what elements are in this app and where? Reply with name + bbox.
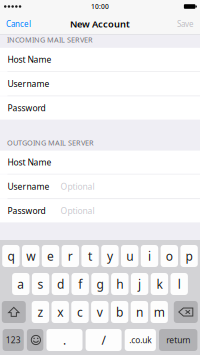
- staticText: u: [126, 248, 133, 264]
- staticText: v: [97, 304, 103, 320]
- staticText: t: [88, 248, 92, 264]
- staticText: Optional: [60, 205, 94, 216]
- staticText: New Account: [70, 18, 130, 30]
- staticText: h: [116, 276, 123, 292]
- button[interactable]: p: [180, 245, 198, 267]
- button[interactable]: k: [151, 273, 168, 295]
- button[interactable]: Username: [0, 174, 200, 198]
- staticText: Save: [177, 19, 194, 29]
- button[interactable]: j: [131, 273, 148, 295]
- button[interactable]: l: [170, 273, 188, 295]
- staticText: Username: [7, 181, 49, 192]
- staticText: y: [107, 248, 113, 264]
- button[interactable]: Password: [0, 96, 200, 120]
- staticText: o: [166, 248, 173, 264]
- staticText: .co.uk: [129, 334, 151, 346]
- staticText: i: [148, 248, 151, 264]
- staticText: n: [136, 304, 143, 320]
- staticText: Host Name: [7, 157, 51, 168]
- staticText: x: [57, 304, 63, 320]
- button[interactable]: v: [91, 301, 108, 323]
- staticText: w: [26, 248, 35, 264]
- staticText: 123: [6, 334, 21, 346]
- staticText: l: [178, 276, 181, 292]
- staticText: Optional: [60, 181, 94, 192]
- button[interactable]: t: [81, 245, 99, 267]
- button[interactable]: w: [22, 245, 39, 267]
- button[interactable]: u: [121, 245, 138, 267]
- button[interactable]: s: [32, 273, 49, 295]
- button[interactable]: e: [42, 245, 59, 267]
- staticText: OUTGOING MAIL SERVER: [7, 138, 94, 147]
- button[interactable]: Cancel: [0, 13, 36, 34]
- staticText: q: [7, 248, 14, 264]
- button[interactable]: o: [161, 245, 178, 267]
- staticText: Password: [7, 205, 45, 216]
- button[interactable]: r: [62, 245, 79, 267]
- button[interactable]: h: [111, 273, 128, 295]
- button[interactable]: Emoji: [27, 329, 43, 351]
- button[interactable]: z: [32, 301, 49, 323]
- button[interactable]: i: [141, 245, 158, 267]
- button[interactable]: n: [131, 301, 148, 323]
- button[interactable]: Host Name: [0, 151, 200, 174]
- staticText: z: [37, 304, 43, 320]
- staticText: e: [47, 248, 54, 264]
- button[interactable]: b: [111, 301, 128, 323]
- staticText: p: [186, 248, 193, 264]
- staticText: Password: [7, 102, 45, 114]
- button[interactable]: y: [101, 245, 119, 267]
- button[interactable]: m: [150, 301, 168, 323]
- button[interactable]: q: [2, 245, 20, 267]
- staticText: s: [38, 276, 44, 292]
- staticText: 10:00: [91, 2, 109, 11]
- button[interactable]: c: [71, 301, 89, 323]
- staticText: j: [138, 276, 141, 292]
- staticText: g: [96, 276, 103, 292]
- button[interactable]: Delete: [174, 301, 198, 323]
- button[interactable]: d: [52, 273, 69, 295]
- staticText: m: [154, 304, 165, 320]
- staticText: a: [17, 276, 24, 292]
- staticText: INCOMING MAIL SERVER: [7, 35, 93, 45]
- staticText: f: [78, 276, 82, 292]
- button[interactable]: g: [91, 273, 109, 295]
- staticText: b: [116, 304, 123, 320]
- button[interactable]: Host Name: [0, 48, 200, 71]
- staticText: c: [77, 304, 83, 320]
- staticText: Username: [7, 78, 49, 89]
- staticText: d: [57, 276, 64, 292]
- button[interactable]: .co.uk: [125, 329, 156, 351]
- staticText: Host Name: [7, 54, 51, 65]
- staticText: .: [63, 332, 66, 348]
- button[interactable]: Username: [0, 72, 200, 96]
- button[interactable]: f: [71, 273, 89, 295]
- button[interactable]: /: [86, 329, 122, 351]
- staticText: k: [156, 276, 162, 292]
- staticText: Cancel: [6, 19, 31, 29]
- button[interactable]: x: [51, 301, 69, 323]
- staticText: /: [102, 332, 106, 348]
- button[interactable]: Shift: [2, 301, 26, 323]
- button[interactable]: a: [12, 273, 29, 295]
- button[interactable]: Password: [0, 199, 200, 222]
- staticText: return: [166, 334, 190, 346]
- button[interactable]: 123: [3, 329, 24, 351]
- staticText: r: [68, 248, 73, 264]
- button[interactable]: return: [159, 329, 197, 351]
- button[interactable]: .: [46, 329, 82, 351]
- button[interactable]: Save: [172, 13, 200, 34]
